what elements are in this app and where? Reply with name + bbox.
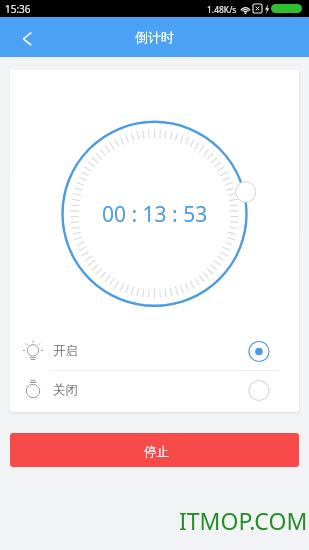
staticText: 倒计时 — [135, 29, 174, 45]
staticText: 停止 — [144, 444, 169, 460]
staticText: 关闭 — [53, 382, 78, 398]
staticText: 开启 — [53, 343, 78, 359]
staticText: 1.48K/s — [207, 4, 237, 16]
staticText: 15:36 — [5, 2, 31, 16]
staticText: ITMOP.COM — [179, 505, 308, 536]
button[interactable]: Back — [7, 19, 47, 59]
button[interactable]: 关闭 — [10, 370, 299, 410]
button[interactable]: 停止 — [10, 433, 299, 467]
staticText: 00 : 13 : 53 — [102, 200, 208, 229]
button[interactable]: 开启 — [10, 331, 299, 371]
